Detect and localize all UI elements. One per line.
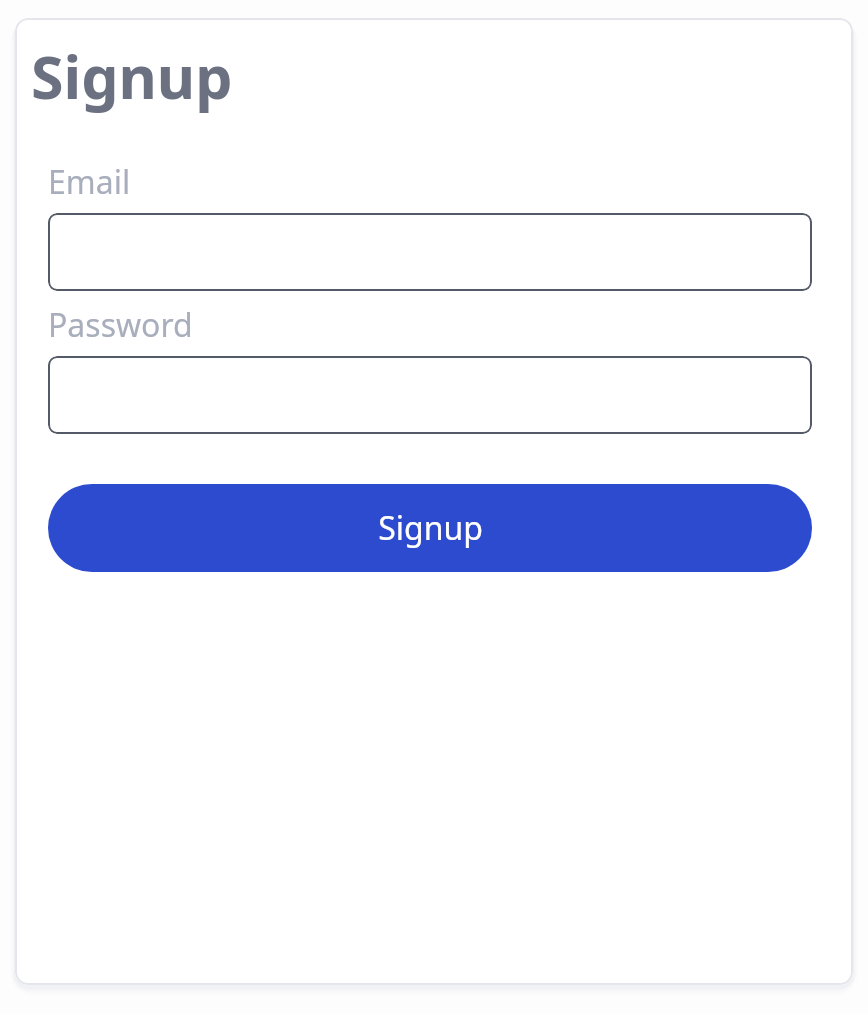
button[interactable]: Email input field xyxy=(48,213,812,291)
staticText: Email xyxy=(48,160,131,204)
staticText: Password xyxy=(48,303,193,347)
staticText: Signup xyxy=(378,506,483,550)
button[interactable]: Password input field xyxy=(48,356,812,434)
staticText: Signup xyxy=(31,36,233,116)
button[interactable]: Signup xyxy=(48,484,812,572)
